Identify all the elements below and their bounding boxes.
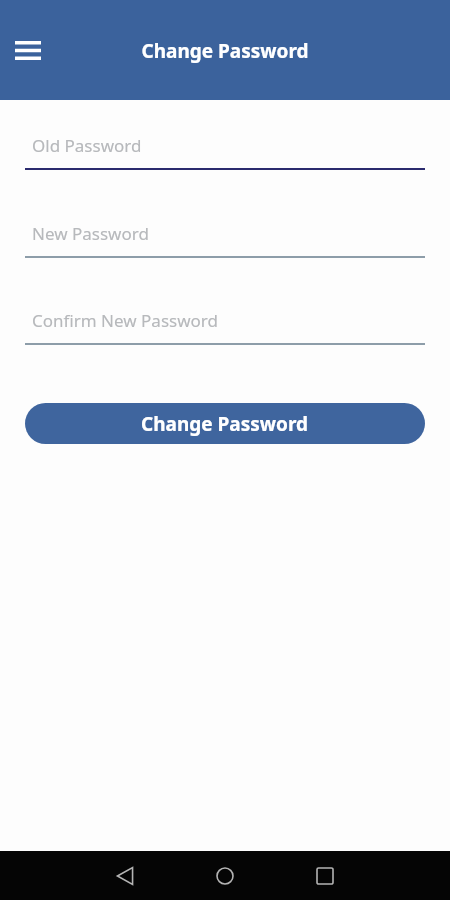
button[interactable]: Old Password <box>25 122 425 170</box>
staticText: New Password <box>32 222 149 245</box>
button[interactable]: New Password <box>25 210 425 258</box>
button[interactable]: Change Password <box>25 403 425 444</box>
staticText: Confirm New Password <box>32 309 218 332</box>
staticText: Old Password <box>32 134 142 157</box>
button[interactable]: Recent apps <box>300 851 350 900</box>
button[interactable]: Confirm New Password <box>25 297 425 345</box>
staticText: Change Password <box>141 38 309 64</box>
button[interactable]: Back <box>100 851 150 900</box>
button[interactable]: Open navigation menu <box>5 27 51 73</box>
staticText: Change Password <box>141 411 309 437</box>
button[interactable]: Home <box>200 851 250 900</box>
